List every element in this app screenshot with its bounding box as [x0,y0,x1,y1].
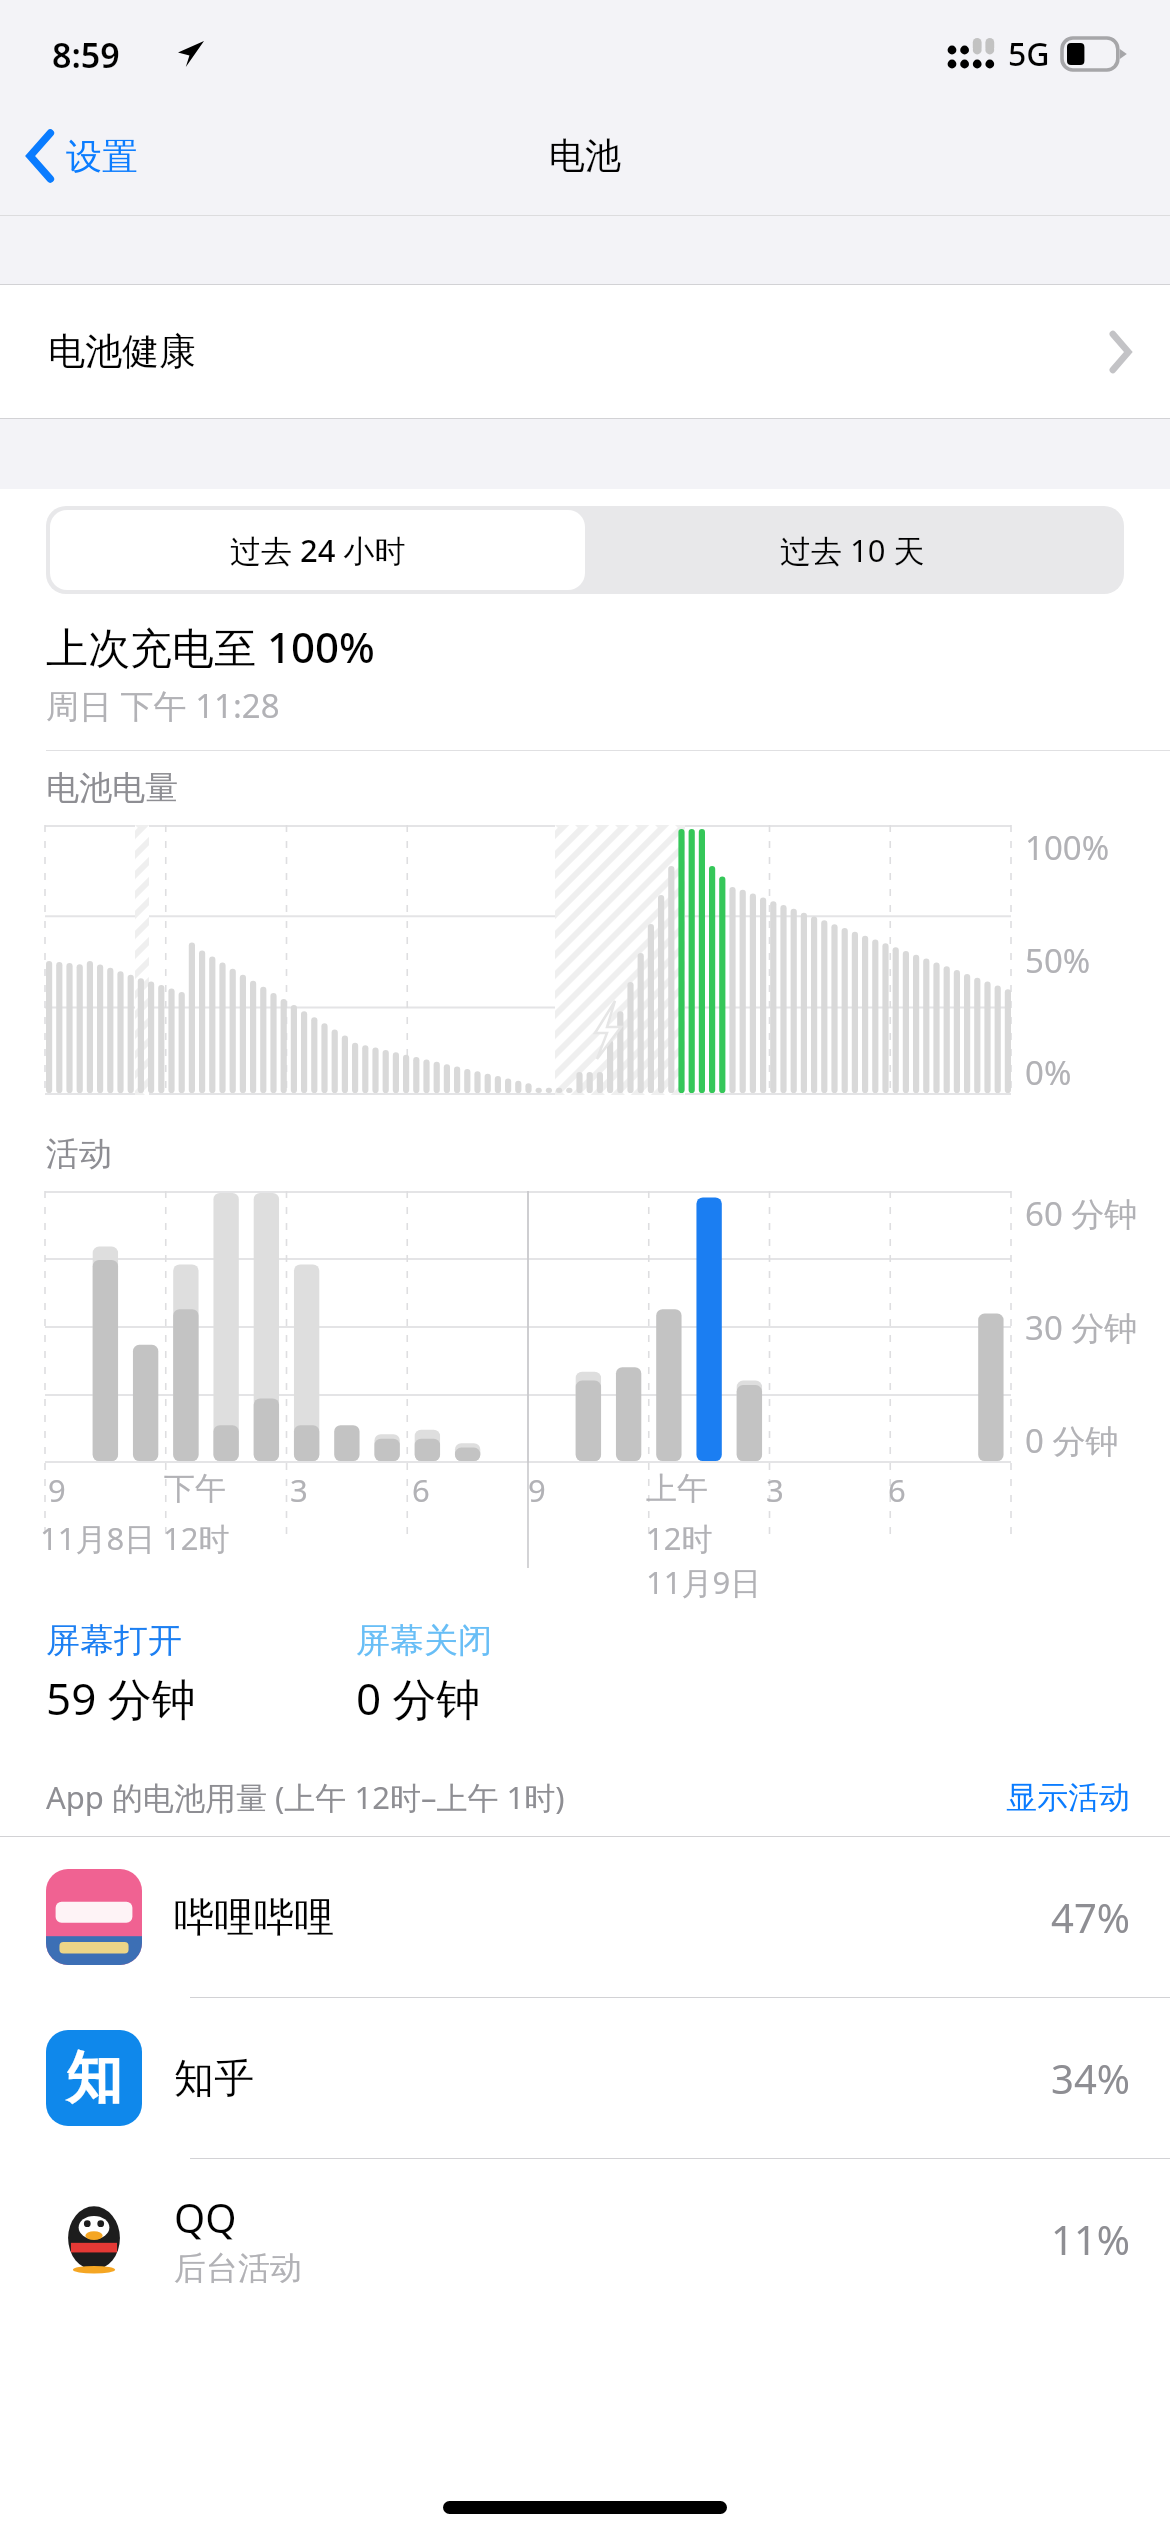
staticText: 59 分钟 [46,1668,196,1728]
staticText: 11月8日 [40,1517,156,1559]
staticText: 47% [1051,1890,1130,1944]
staticText: 12时 [163,1517,230,1559]
staticText: 屏幕关闭 [356,1619,492,1662]
button[interactable]: 知 [0,1998,1170,2158]
staticText: 9 [48,1469,66,1511]
staticText: 60 分钟 [1025,1191,1138,1236]
button[interactable]: 过去 24 小时 [50,510,585,590]
staticText: 周日 下午 11:28 [46,683,280,728]
staticText: 30 分钟 [1025,1305,1138,1350]
staticText: 下午 [164,1469,226,1508]
staticText: 上午 [646,1469,708,1508]
staticText: 50% [1025,938,1091,983]
staticText: 0 分钟 [356,1668,481,1728]
staticText: App 的电池用量 (上午 12时–上午 1时) [46,1776,565,1818]
staticText: 11月9日 [646,1561,762,1603]
staticText: 电池电量 [46,767,178,809]
button[interactable]: QQ [0,2159,1170,2319]
staticText: 设置 [66,134,138,179]
staticText: QQ [174,2190,237,2244]
staticText: 显示活动 [1006,1778,1130,1817]
staticText: 0 分钟 [1025,1418,1119,1463]
staticText: 电池健康 [48,328,196,375]
staticText: 哔哩哔哩 [174,1892,334,1942]
staticText: 屏幕打开 [46,1619,182,1662]
staticText: 100% [1025,825,1110,870]
staticText: 6 [412,1469,430,1511]
button[interactable]: 设置 [0,123,158,189]
staticText: 活动 [46,1133,112,1175]
staticText: 8:59 [52,32,120,78]
staticText: 9 [528,1469,546,1511]
staticText: 知 [66,2043,122,2114]
staticText: 3 [290,1469,308,1511]
staticText: 0% [1025,1050,1072,1095]
button[interactable]: 哔哩哔哩 [0,1837,1170,1997]
staticText: 3 [766,1469,784,1511]
staticText: 12时 [646,1517,713,1559]
staticText: 电池 [549,133,621,178]
staticText: 后台活动 [174,2248,302,2288]
button[interactable]: 电池健康 [0,285,1170,418]
staticText: 知乎 [174,2053,254,2103]
staticText: 11% [1051,2212,1130,2266]
button[interactable]: 显示活动 [1006,1778,1130,1817]
staticText: 5G [1008,32,1050,76]
staticText: 34% [1051,2051,1130,2105]
staticText: 过去 10 天 [780,529,925,571]
staticText: 6 [888,1469,906,1511]
button[interactable]: 过去 10 天 [585,510,1120,590]
staticText: 过去 24 小时 [230,529,406,571]
staticText: 上次充电至 100% [46,618,375,675]
